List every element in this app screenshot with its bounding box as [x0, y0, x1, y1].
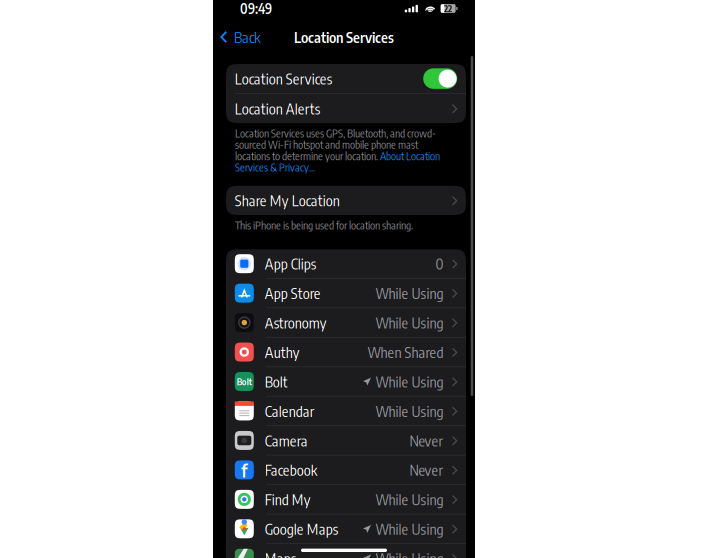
button[interactable]: f [226, 455, 466, 484]
staticText: 09:49 [240, 0, 272, 17]
staticText: While Using [376, 313, 444, 332]
staticText: f [241, 458, 247, 481]
staticText: About Location [380, 149, 440, 162]
staticText: Authy [265, 343, 300, 361]
button[interactable]: Camera [226, 426, 466, 455]
staticText: When Shared [368, 343, 444, 361]
staticText: Location Services uses GPS, Bluetooth, a… [235, 127, 436, 140]
staticText: While Using [376, 549, 444, 558]
button[interactable]: Astronomy [226, 308, 466, 337]
staticText: Services & Privacy... [235, 160, 315, 174]
staticText: Astronomy [265, 313, 327, 332]
staticText: While Using [376, 490, 444, 508]
staticText: Location Services [235, 69, 333, 88]
button[interactable]: Location Alerts [226, 94, 466, 123]
staticText: This iPhone is being used for location s… [235, 218, 413, 232]
button[interactable]: Authy [226, 338, 466, 366]
staticText: Location Services [294, 28, 394, 46]
button[interactable]: App Store [226, 279, 466, 308]
staticText: 0 [436, 254, 444, 273]
button[interactable] [423, 68, 457, 89]
button[interactable]: Find My [226, 485, 466, 514]
staticText: sourced Wi-Fi hotspot and mobile phone m… [235, 138, 418, 151]
staticText: Bolt [237, 376, 252, 387]
staticText: Camera [265, 431, 308, 450]
staticText: While Using [376, 284, 444, 302]
button[interactable]: Bolt [226, 367, 466, 396]
staticText: 22 [444, 3, 452, 14]
staticText: App Store [265, 284, 321, 302]
staticText: Facebook [265, 461, 318, 479]
staticText: Calendar [265, 402, 315, 420]
staticText: Bolt [265, 372, 288, 391]
staticText: While Using [376, 372, 444, 391]
staticText: While Using [376, 520, 444, 538]
button[interactable]: App Clips [226, 249, 466, 278]
staticText: Never [410, 461, 444, 479]
staticText: While Using [376, 402, 444, 420]
staticText: Find My [265, 490, 311, 508]
staticText: Never [410, 431, 444, 450]
staticText: Maps [265, 549, 297, 558]
button[interactable]: Share My Location [226, 186, 466, 215]
staticText: Back [234, 28, 261, 46]
staticText: Google Maps [265, 520, 339, 538]
staticText: Share My Location [235, 191, 340, 209]
button[interactable]: Back [213, 24, 267, 50]
button[interactable]: Google Maps [226, 514, 466, 543]
staticText: App Clips [265, 254, 317, 273]
staticText: Location Alerts [235, 99, 321, 118]
button[interactable]: Maps [226, 544, 466, 558]
staticText: locations to determine your location. [235, 149, 380, 162]
button[interactable]: Calendar [226, 397, 466, 425]
